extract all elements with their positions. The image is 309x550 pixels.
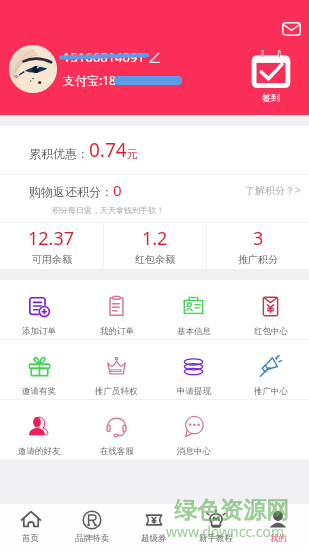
staticText: 基本信息: [177, 326, 211, 337]
staticText: 红包余额: [135, 253, 175, 266]
staticText: 我的订单: [100, 326, 134, 337]
staticText: 元: [127, 147, 138, 161]
staticText: 推广员特权: [95, 386, 138, 397]
button[interactable]: 在线客服: [78, 400, 155, 459]
staticText: 消息中心: [177, 446, 211, 457]
button[interactable]: 红包中心: [232, 280, 309, 339]
staticText: 15166814091: [63, 48, 145, 66]
button[interactable]: 超级券: [123, 504, 185, 550]
staticText: 可用余额: [32, 253, 72, 266]
staticText: 邀请的好友: [18, 446, 61, 457]
button[interactable]: Edit nickname: [149, 52, 160, 63]
button[interactable]: 基本信息: [155, 280, 232, 339]
button[interactable]: 推广中心: [232, 340, 309, 399]
staticText: 1.2: [142, 226, 168, 251]
button[interactable]: 我的订单: [78, 280, 155, 339]
staticText: 了解积分？>: [245, 183, 301, 197]
button[interactable]: 首页: [0, 504, 61, 550]
staticText: 3: [253, 226, 264, 251]
staticText: 绿色资源网: [174, 496, 289, 525]
staticText: 超级券: [141, 533, 167, 544]
button[interactable]: 邀请有奖: [0, 340, 78, 399]
button[interactable]: 了解积分？>: [245, 183, 301, 197]
staticText: 红包中心: [254, 326, 288, 337]
staticText: 品牌特卖: [75, 533, 109, 544]
button[interactable]: 申请提现: [155, 340, 232, 399]
staticText: 邀请有奖: [22, 386, 56, 397]
button[interactable]: 12.37: [0, 223, 103, 269]
button[interactable]: 邀请的好友: [0, 400, 78, 459]
button[interactable]: 新手教程: [185, 504, 247, 550]
staticText: 12.37: [28, 226, 75, 251]
button[interactable]: 1.2: [104, 223, 206, 269]
staticText: 添加订单: [22, 326, 56, 337]
staticText: 推广积分: [238, 253, 278, 266]
button[interactable]: 添加订单: [0, 280, 78, 339]
button[interactable]: 3: [207, 223, 309, 269]
button[interactable]: 推广员特权: [78, 340, 155, 399]
staticText: 首页: [22, 533, 39, 544]
button[interactable]: 我的: [247, 504, 309, 550]
staticText: 积分每日返，天天拿钱到手软！: [52, 205, 164, 215]
staticText: 累积优惠：: [29, 146, 89, 161]
staticText: 签到: [262, 92, 280, 103]
staticText: 0.74: [89, 137, 127, 163]
staticText: 在线客服: [100, 446, 134, 457]
staticText: 我的: [270, 533, 287, 544]
button[interactable]: 签到: [250, 50, 292, 103]
button[interactable]: 品牌特卖: [61, 504, 123, 550]
button[interactable]: 消息中心: [155, 400, 232, 459]
staticText: 购物返还积分：: [29, 184, 113, 199]
staticText: 申请提现: [177, 386, 211, 397]
staticText: www.downcc.com: [166, 522, 285, 541]
button[interactable]: 累积优惠：: [0, 126, 309, 174]
button[interactable]: Messages: [282, 22, 301, 36]
staticText: 支付宝:18: [63, 72, 116, 88]
staticText: 推广中心: [254, 386, 288, 397]
staticText: 新手教程: [199, 533, 233, 544]
button[interactable]: Profile photo: [9, 45, 57, 93]
staticText: 0: [113, 180, 122, 200]
